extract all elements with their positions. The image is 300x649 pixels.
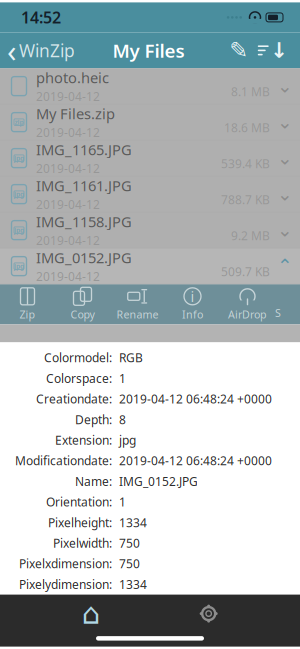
staticText: jpg: [119, 432, 136, 448]
staticText: IMG_1161.JPG: [36, 176, 132, 195]
staticText: 2019-04-12 06:48:24 +0000: [119, 453, 272, 469]
button[interactable]: jpg: [0, 176, 300, 212]
button[interactable]: i: [165, 284, 220, 324]
button[interactable]: photo.heic: [0, 68, 300, 104]
button[interactable]: Sort: [256, 32, 300, 68]
staticText: 539.4 KB: [221, 156, 270, 172]
staticText: jpg: [14, 190, 24, 199]
staticText: 1: [119, 494, 126, 510]
staticText: ⌂: [82, 597, 101, 630]
staticText: 8.1 MB: [231, 84, 270, 100]
staticText: AirDrop: [228, 307, 267, 321]
staticText: 2019-04-12: [36, 196, 100, 212]
button[interactable]: Zip: [0, 284, 55, 324]
staticText: IMG_1165.JPG: [36, 140, 132, 159]
staticText: 750: [119, 556, 140, 572]
staticText: IMG_0152.JPG: [36, 248, 132, 267]
staticText: ✎: [229, 37, 248, 63]
staticText: Extension:: [55, 432, 112, 448]
staticText: Pixelydimension:: [19, 576, 112, 592]
button[interactable]: Settings: [183, 599, 235, 629]
staticText: 1: [119, 370, 126, 386]
staticText: 788.7 KB: [221, 192, 270, 208]
staticText: WinZip: [19, 39, 75, 62]
button[interactable]: Home: [65, 599, 117, 629]
staticText: Info: [182, 307, 203, 321]
staticText: Orientation:: [46, 494, 112, 510]
staticText: 2019-04-12: [36, 232, 100, 248]
staticText: ↓: [270, 38, 288, 62]
staticText: jpg: [14, 262, 24, 271]
staticText: Rename: [116, 307, 158, 321]
button[interactable]: zip: [0, 104, 300, 140]
staticText: 2019-04-12: [36, 88, 100, 104]
staticText: 1334: [119, 514, 147, 530]
staticText: Depth:: [75, 411, 112, 427]
staticText: ⌄: [277, 184, 293, 205]
staticText: Copy: [70, 307, 94, 321]
staticText: ⌄: [277, 220, 293, 241]
staticText: jpg: [14, 226, 24, 235]
staticText: Zip: [19, 307, 35, 321]
staticText: My Files: [112, 38, 184, 63]
button[interactable]: Edit: [222, 32, 256, 68]
staticText: 2019-04-12: [36, 160, 100, 176]
staticText: S: [275, 306, 281, 320]
staticText: Colorspace:: [46, 370, 112, 386]
staticText: 9.2 MB: [231, 228, 270, 244]
button[interactable]: jpg: [0, 248, 300, 284]
staticText: Pixelxdimension:: [19, 556, 112, 572]
staticText: jpg: [14, 154, 24, 163]
button[interactable]: AirDrop: [220, 284, 275, 324]
staticText: Pixelheight:: [48, 514, 112, 530]
staticText: 1334: [119, 576, 147, 592]
staticText: ⌃: [277, 256, 293, 277]
staticText: IMG_0152.JPG: [119, 473, 198, 489]
staticText: photo.heic: [36, 68, 109, 87]
staticText: 2019-04-12: [36, 124, 100, 140]
staticText: 8: [119, 411, 126, 427]
staticText: 18.6 MB: [224, 120, 270, 136]
staticText: IMG_1158.JPG: [36, 212, 132, 231]
button[interactable]: jpg: [0, 140, 300, 176]
staticText: 750: [119, 535, 140, 551]
staticText: 2019-04-12: [36, 268, 100, 284]
staticText: 509.7 KB: [221, 264, 270, 280]
staticText: RGB: [119, 350, 143, 366]
button[interactable]: ‹: [0, 32, 75, 68]
button[interactable]: jpg: [0, 212, 300, 248]
staticText: ⌄: [277, 148, 293, 169]
button[interactable]: Copy: [55, 284, 110, 324]
staticText: Modificationdate:: [15, 453, 112, 469]
staticText: 14:52: [21, 7, 61, 28]
staticText: ‹: [7, 30, 17, 71]
staticText: Pixelwidth:: [53, 535, 112, 551]
staticText: Creationdate:: [36, 391, 112, 407]
staticText: Name:: [75, 473, 112, 489]
staticText: zip: [14, 118, 23, 127]
staticText: My Files.zip: [36, 104, 115, 123]
staticText: ⌄: [277, 112, 293, 133]
staticText: 2019-04-12 06:48:24 +0000: [119, 391, 272, 407]
staticText: i: [190, 287, 194, 306]
staticText: Colormodel:: [44, 350, 112, 366]
button[interactable]: Rename: [110, 284, 165, 324]
staticText: ⌄: [277, 76, 293, 97]
